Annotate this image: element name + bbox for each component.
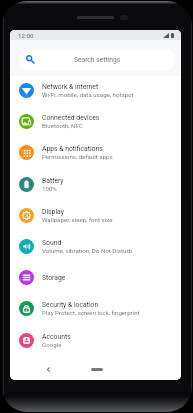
staticText: Google bbox=[42, 341, 62, 348]
staticText: Storage bbox=[42, 274, 66, 282]
staticText: Network & internet bbox=[42, 83, 99, 91]
staticText: Sound bbox=[42, 239, 62, 247]
button[interactable]: Search settings bbox=[18, 49, 176, 70]
button[interactable]: Security & location bbox=[10, 293, 181, 324]
staticText: Apps & notifications bbox=[42, 145, 103, 153]
staticText: Wi-Fi, mobile, data usage, hotspot bbox=[42, 91, 134, 98]
button[interactable]: Accounts bbox=[10, 325, 181, 356]
button[interactable]: Apps & notifications bbox=[10, 137, 181, 168]
staticText: Accounts bbox=[42, 333, 71, 341]
button[interactable]: Sound bbox=[10, 231, 181, 262]
staticText: Play Protect, screen lock, fingerprint bbox=[42, 309, 140, 316]
staticText: Bluetooth, NFC bbox=[42, 122, 83, 129]
staticText: 12:00 bbox=[18, 32, 34, 39]
staticText: 100% bbox=[42, 185, 57, 192]
staticText: Connected devices bbox=[42, 114, 100, 122]
staticText: Security & location bbox=[42, 301, 99, 309]
staticText: Permissions, default apps bbox=[42, 153, 113, 160]
button[interactable]: Battery bbox=[10, 169, 181, 200]
button[interactable]: Storage bbox=[10, 262, 181, 293]
staticText: Display bbox=[42, 208, 64, 216]
button[interactable]: Back bbox=[41, 362, 55, 376]
staticText: Wallpaper, sleep, font size bbox=[42, 216, 113, 223]
button[interactable]: Connected devices bbox=[10, 106, 181, 137]
staticText: Search settings bbox=[74, 56, 121, 64]
button[interactable]: Network & internet bbox=[10, 75, 181, 106]
staticText: Volume, vibration, Do Not Disturb bbox=[42, 247, 132, 254]
button[interactable]: Home bbox=[91, 368, 103, 371]
staticText: Battery bbox=[42, 177, 64, 185]
button[interactable]: Display bbox=[10, 200, 181, 231]
